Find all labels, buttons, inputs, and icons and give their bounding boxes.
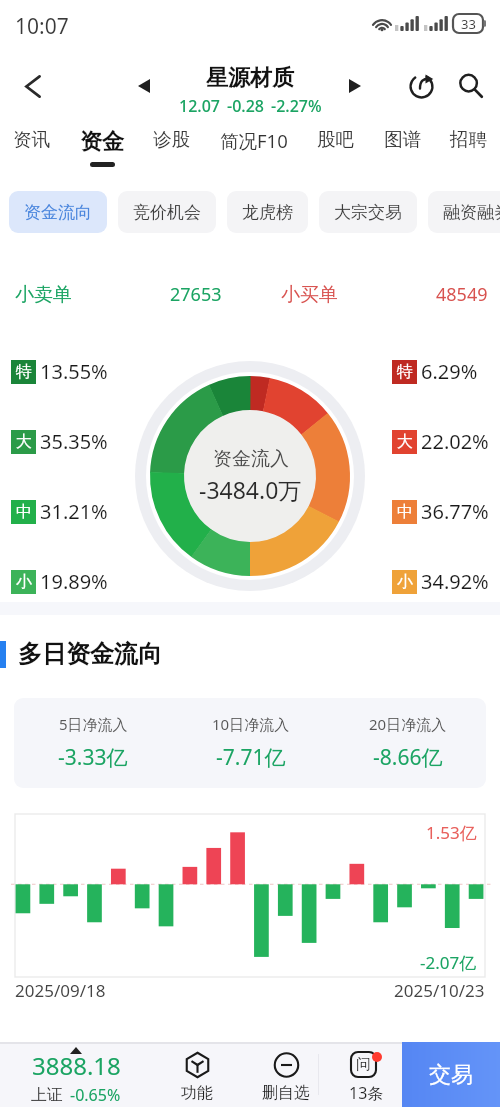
button[interactable]: 股吧 — [309, 120, 362, 162]
staticText: 36.77% — [421, 498, 489, 525]
staticText: -3.33亿 — [58, 743, 128, 772]
button[interactable]: 简况F10 — [212, 120, 296, 164]
button[interactable]: 问 — [330, 1042, 402, 1107]
staticText: -7.71亿 — [216, 743, 286, 772]
staticText: 33 — [461, 15, 476, 33]
staticText: 20日净流入 — [369, 714, 447, 734]
button[interactable]: 资金 — [72, 120, 132, 167]
button[interactable]: 大宗交易 — [319, 191, 417, 233]
button[interactable]: 交易 — [402, 1042, 500, 1107]
staticText: 中 — [397, 502, 413, 522]
button[interactable]: 龙虎榜 — [227, 191, 308, 233]
staticText: 34.92% — [421, 568, 489, 595]
staticText: 2025/09/18 — [15, 979, 106, 1002]
staticText: 特 — [16, 362, 32, 382]
staticText: 48549 — [436, 282, 488, 307]
staticText: -0.28 — [227, 95, 264, 117]
staticText: 融资融券 — [443, 202, 500, 223]
staticText: 5日净流入 — [59, 714, 128, 734]
staticText: 小 — [16, 572, 32, 592]
staticText: 1.53亿 — [426, 821, 477, 844]
button[interactable]: 3888.18 — [0, 1042, 152, 1107]
staticText: 删自选 — [262, 1083, 310, 1103]
staticText: 诊股 — [153, 128, 190, 151]
staticText: 10:07 — [15, 12, 69, 41]
staticText: 小卖单 — [15, 283, 72, 307]
button[interactable]: 图谱 — [376, 120, 429, 162]
staticText: 22.02% — [421, 428, 489, 455]
staticText: 2025/10/23 — [394, 979, 485, 1002]
button[interactable]: 删自选 — [241, 1042, 330, 1107]
staticText: -8.66亿 — [373, 743, 443, 772]
button[interactable]: 资金流向 — [9, 191, 107, 233]
staticText: 资金流向 — [24, 202, 92, 223]
staticText: 特 — [397, 362, 413, 382]
staticText: 小买单 — [281, 283, 338, 307]
staticText: 问 — [356, 1055, 371, 1074]
staticText: 星源材质 — [206, 64, 294, 92]
staticText: 简况F10 — [220, 128, 288, 153]
staticText: -3484.0万 — [199, 474, 302, 505]
button[interactable]: 招聘 — [442, 120, 495, 162]
button[interactable]: 融资融券 — [428, 191, 500, 233]
staticText: 小 — [397, 572, 413, 592]
staticText: 龙虎榜 — [242, 202, 293, 223]
staticText: 竞价机会 — [133, 202, 201, 223]
button[interactable]: Back — [7, 61, 58, 112]
staticText: 交易 — [429, 1061, 473, 1089]
staticText: 31.21% — [40, 498, 108, 525]
button[interactable]: Refresh — [397, 62, 445, 110]
staticText: 图谱 — [384, 128, 421, 151]
staticText: 资讯 — [13, 128, 50, 151]
staticText: 大 — [397, 432, 413, 452]
staticText: 大 — [16, 432, 32, 452]
staticText: 中 — [16, 502, 32, 522]
button[interactable]: 竞价机会 — [118, 191, 216, 233]
staticText: 19.89% — [40, 568, 108, 595]
staticText: 多日资金流向 — [18, 639, 162, 669]
staticText: 功能 — [181, 1083, 213, 1103]
staticText: 12.07 — [179, 95, 220, 117]
staticText: 资金流入 — [213, 447, 289, 471]
button[interactable]: 功能 — [152, 1042, 241, 1107]
staticText: -0.65% — [70, 1084, 121, 1106]
button[interactable]: 资讯 — [5, 120, 58, 162]
staticText: 3888.18 — [32, 1049, 121, 1082]
button[interactable]: 诊股 — [145, 120, 198, 162]
button[interactable]: Search — [447, 62, 495, 110]
staticText: -2.27% — [271, 95, 322, 117]
staticText: 35.35% — [40, 428, 108, 455]
staticText: 股吧 — [317, 128, 354, 151]
staticText: 6.29% — [421, 358, 478, 385]
staticText: 27653 — [170, 282, 222, 307]
staticText: 13.55% — [40, 358, 108, 385]
staticText: 资金 — [80, 128, 124, 156]
staticText: 10日净流入 — [212, 714, 290, 734]
staticText: 招聘 — [450, 128, 487, 151]
staticText: 大宗交易 — [334, 202, 402, 223]
staticText: 13条 — [349, 1082, 384, 1104]
staticText: 上证 — [31, 1085, 63, 1105]
staticText: -2.07亿 — [420, 951, 477, 974]
